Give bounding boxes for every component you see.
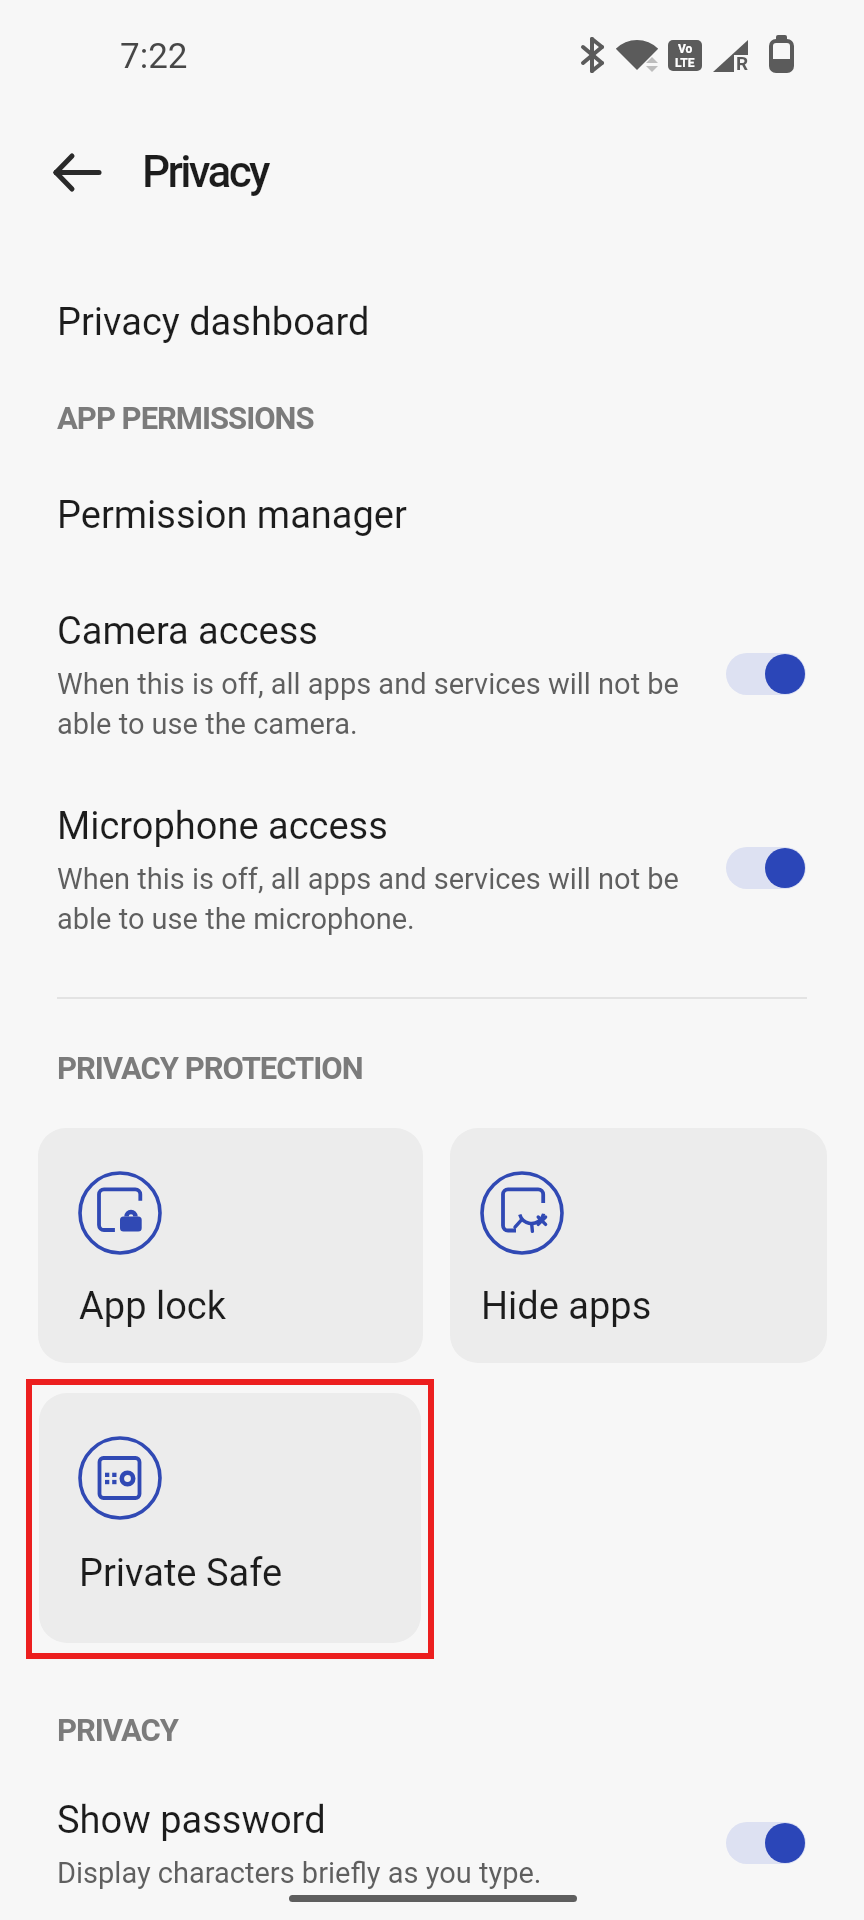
- button[interactable]: [40, 142, 110, 202]
- button[interactable]: [726, 1822, 806, 1864]
- staticText: PRIVACY PROTECTION: [57, 1050, 363, 1086]
- staticText: App lock: [79, 1284, 226, 1329]
- staticText: Privacy dashboard: [57, 300, 370, 345]
- staticText: APP PERMISSIONS: [57, 400, 314, 436]
- staticText: When this is off, all apps and services …: [57, 862, 679, 896]
- staticText: Permission manager: [57, 493, 407, 538]
- button[interactable]: [0, 1780, 864, 1900]
- button[interactable]: [0, 470, 864, 560]
- staticText: 7:22: [120, 36, 188, 77]
- staticText: LTE: [675, 56, 695, 70]
- staticText: Camera access: [57, 609, 318, 654]
- staticText: When this is off, all apps and services …: [57, 667, 679, 701]
- staticText: Privacy: [142, 146, 268, 198]
- staticText: R: [736, 52, 749, 74]
- staticText: able to use the camera.: [57, 707, 358, 741]
- button[interactable]: [0, 282, 864, 362]
- button[interactable]: [0, 600, 864, 750]
- staticText: Microphone access: [57, 804, 388, 849]
- button[interactable]: [450, 1128, 827, 1363]
- button[interactable]: [0, 795, 864, 945]
- staticText: Vo: [678, 42, 693, 56]
- staticText: PRIVACY: [57, 1712, 179, 1748]
- staticText: able to use the microphone.: [57, 902, 415, 936]
- button[interactable]: [39, 1393, 421, 1643]
- button[interactable]: [726, 653, 806, 695]
- button[interactable]: [38, 1128, 423, 1363]
- staticText: Hide apps: [481, 1284, 652, 1329]
- button[interactable]: [726, 847, 806, 889]
- staticText: Display characters briefly as you type.: [57, 1856, 542, 1890]
- staticText: Show password: [57, 1798, 326, 1843]
- staticText: Private Safe: [79, 1551, 283, 1596]
